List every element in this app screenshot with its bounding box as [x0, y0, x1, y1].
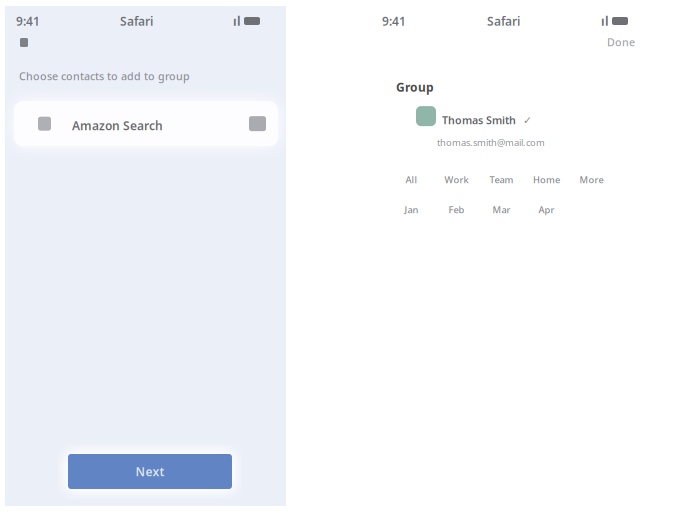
- staticText: Next: [135, 463, 164, 479]
- button[interactable]: Feb: [434, 203, 479, 217]
- staticText: More: [579, 173, 603, 186]
- staticText: 9:41: [382, 13, 406, 29]
- button[interactable]: Mar: [479, 203, 524, 217]
- staticText: Choose contacts to add to group: [19, 69, 190, 83]
- staticText: Jan: [404, 203, 418, 216]
- button[interactable]: Done: [602, 32, 640, 52]
- staticText: Safari: [120, 13, 153, 29]
- button[interactable]: Jan: [389, 203, 434, 217]
- staticText: Done: [607, 35, 635, 49]
- staticText: Apr: [538, 203, 554, 216]
- button[interactable]: All: [389, 173, 434, 187]
- staticText: Amazon Search: [72, 118, 163, 134]
- staticText: Home: [533, 173, 560, 186]
- button[interactable]: More: [569, 173, 614, 187]
- staticText: ıl: [601, 13, 609, 29]
- staticText: 9:41: [16, 13, 40, 29]
- staticText: ıl: [233, 13, 241, 29]
- button[interactable]: Work: [434, 173, 479, 187]
- staticText: Safari: [487, 13, 520, 29]
- staticText: Thomas Smith: [442, 113, 516, 127]
- staticText: thomas.smith@mail.com: [437, 136, 545, 149]
- button[interactable]: Next: [68, 454, 232, 489]
- button[interactable]: Amazon Search: [14, 101, 278, 146]
- button[interactable]: Team: [479, 173, 524, 187]
- staticText: Feb: [448, 203, 464, 216]
- staticText: ✓: [523, 114, 532, 126]
- staticText: Group: [396, 79, 434, 95]
- staticText: All: [405, 173, 417, 186]
- button[interactable]: Home: [524, 173, 569, 187]
- button[interactable]: Apr: [524, 203, 569, 217]
- staticText: Work: [444, 173, 468, 186]
- staticText: Team: [489, 173, 513, 186]
- button[interactable]: Back: [15, 33, 33, 52]
- staticText: Mar: [492, 203, 510, 216]
